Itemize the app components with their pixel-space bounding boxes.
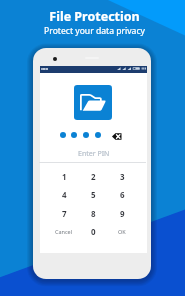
staticText: File Protection <box>49 8 140 25</box>
button[interactable]: Cancel <box>50 222 78 240</box>
staticText: 0 <box>91 226 96 237</box>
staticText: 6 <box>120 189 125 200</box>
button[interactable]: 5 <box>79 185 107 203</box>
staticText: Enter PIN <box>78 149 110 159</box>
button[interactable]: 3 <box>108 167 136 185</box>
button[interactable]: 6 <box>108 185 136 203</box>
staticText: 2 <box>91 171 96 182</box>
staticText: Cancel <box>55 228 73 235</box>
staticText: 9 <box>120 208 125 219</box>
staticText: Protect your data privacy <box>44 25 145 37</box>
staticText: 1 <box>62 171 67 182</box>
button[interactable]: Backspace <box>112 133 122 140</box>
staticText: 3 <box>120 171 125 182</box>
button[interactable]: 1 <box>50 167 78 185</box>
button[interactable]: 7 <box>50 204 78 222</box>
button[interactable]: 8 <box>79 204 107 222</box>
staticText: 5 <box>91 189 96 200</box>
button[interactable]: 0 <box>79 222 107 240</box>
button[interactable]: OK <box>108 222 136 240</box>
staticText: OK <box>118 228 126 235</box>
staticText: 7 <box>62 208 67 219</box>
button[interactable]: 4 <box>50 185 78 203</box>
staticText: 8 <box>91 208 96 219</box>
staticText: 4 <box>62 189 67 200</box>
button[interactable]: 9 <box>108 204 136 222</box>
button[interactable]: 2 <box>79 167 107 185</box>
